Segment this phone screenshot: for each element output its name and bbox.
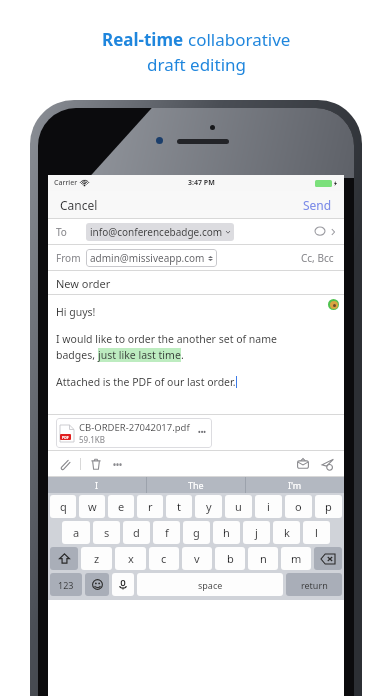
button[interactable]: a — [62, 521, 90, 544]
staticText: Real-time — [102, 28, 188, 51]
button[interactable]: I — [48, 477, 146, 493]
staticText: I would like to order the another set of… — [56, 332, 277, 346]
staticText: 123 — [58, 579, 74, 591]
button[interactable]: n — [248, 547, 278, 570]
staticText: h — [223, 525, 230, 540]
button[interactable]: Cc, Bcc — [299, 249, 336, 267]
button[interactable]: Dictate — [112, 573, 134, 596]
button[interactable]: Delete draft — [88, 456, 104, 472]
staticText: New order — [56, 276, 111, 291]
button[interactable]: Shift — [50, 547, 78, 570]
button[interactable]: More options — [196, 426, 208, 440]
button[interactable]: h — [213, 521, 240, 544]
staticText: collaborative — [188, 28, 291, 51]
staticText: return — [301, 579, 328, 591]
button[interactable]: t — [166, 495, 192, 518]
staticText: q — [60, 499, 67, 514]
staticText: Attached is the PDF of our last order. — [56, 375, 236, 389]
button[interactable]: m — [281, 547, 311, 570]
staticText: i — [267, 499, 270, 514]
button[interactable]: q — [50, 495, 76, 518]
staticText: w — [88, 499, 97, 514]
staticText: Send — [303, 197, 332, 213]
button[interactable]: From — [48, 245, 344, 271]
button[interactable]: c — [149, 547, 179, 570]
button[interactable]: Emoji — [85, 573, 109, 596]
button[interactable]: The — [147, 477, 245, 493]
staticText: f — [165, 525, 169, 540]
staticText: I — [95, 479, 99, 491]
button[interactable]: Backspace — [314, 547, 342, 570]
staticText: u — [235, 499, 242, 514]
staticText: x — [128, 551, 134, 566]
staticText: z — [94, 551, 100, 566]
button[interactable]: Send — [297, 193, 338, 217]
staticText: g — [193, 525, 200, 540]
staticText: d — [133, 525, 140, 540]
staticText: c — [161, 551, 167, 566]
staticText: n — [260, 551, 267, 566]
button[interactable]: k — [273, 521, 300, 544]
button[interactable]: PDF — [56, 418, 212, 448]
button[interactable]: j — [243, 521, 270, 544]
button[interactable]: More — [111, 457, 125, 472]
button[interactable]: New order — [48, 271, 344, 295]
button[interactable]: d — [123, 521, 150, 544]
button[interactable]: p — [315, 495, 342, 518]
staticText: Cancel — [60, 197, 98, 213]
staticText: CB-ORDER-27042017.pdf — [79, 421, 190, 434]
button[interactable]: l — [303, 521, 330, 544]
staticText: just like last time — [98, 348, 181, 362]
staticText: s — [104, 525, 110, 540]
staticText: I'm — [288, 479, 302, 491]
button[interactable]: u — [225, 495, 252, 518]
button[interactable]: v — [182, 547, 212, 570]
button[interactable]: f — [153, 521, 180, 544]
staticText: The — [188, 479, 204, 491]
staticText: r — [148, 499, 153, 514]
button[interactable]: r — [137, 495, 163, 518]
button[interactable]: space — [137, 573, 283, 596]
button[interactable]: Send later — [319, 456, 336, 473]
staticText: p — [325, 499, 332, 514]
staticText: admin@missiveapp.com — [90, 251, 205, 265]
button[interactable]: o — [285, 495, 312, 518]
button[interactable]: To — [48, 219, 344, 245]
button[interactable]: b — [215, 547, 245, 570]
staticText: Carrier — [54, 178, 78, 188]
button[interactable]: Mark unread — [295, 456, 311, 472]
staticText: To — [56, 225, 67, 239]
staticText: l — [315, 525, 318, 540]
staticText: e — [118, 499, 125, 514]
button[interactable]: Numbers — [50, 573, 82, 596]
staticText: m — [291, 551, 302, 566]
staticText: draft editing — [147, 53, 246, 76]
button[interactable]: s — [93, 521, 120, 544]
button[interactable]: z — [81, 547, 112, 570]
button[interactable]: y — [195, 495, 222, 518]
staticText: j — [255, 525, 258, 540]
button[interactable]: Cancel — [54, 193, 104, 217]
button[interactable]: x — [115, 547, 146, 570]
staticText: 59.1KB — [79, 434, 106, 445]
staticText: ••• — [113, 459, 123, 470]
staticText: ••• — [198, 428, 206, 438]
staticText: v — [194, 551, 200, 566]
staticText: info@conferencebadge.com — [90, 225, 223, 239]
staticText: From — [56, 251, 81, 265]
staticText: t — [177, 499, 181, 514]
button[interactable]: i — [255, 495, 282, 518]
staticText: . — [181, 348, 184, 362]
staticText: Hi guys! — [56, 305, 96, 319]
button[interactable]: g — [183, 521, 210, 544]
button[interactable]: e — [108, 495, 134, 518]
staticText: Cc, Bcc — [301, 251, 334, 265]
button[interactable]: return — [286, 573, 342, 596]
staticText: 3:47 PM — [188, 178, 215, 188]
button[interactable]: Comments — [313, 225, 327, 239]
button[interactable]: I'm — [246, 477, 344, 493]
button[interactable]: w — [79, 495, 105, 518]
button[interactable]: Attach file — [56, 456, 73, 473]
staticText: PDF — [62, 435, 69, 440]
staticText: b — [227, 551, 234, 566]
